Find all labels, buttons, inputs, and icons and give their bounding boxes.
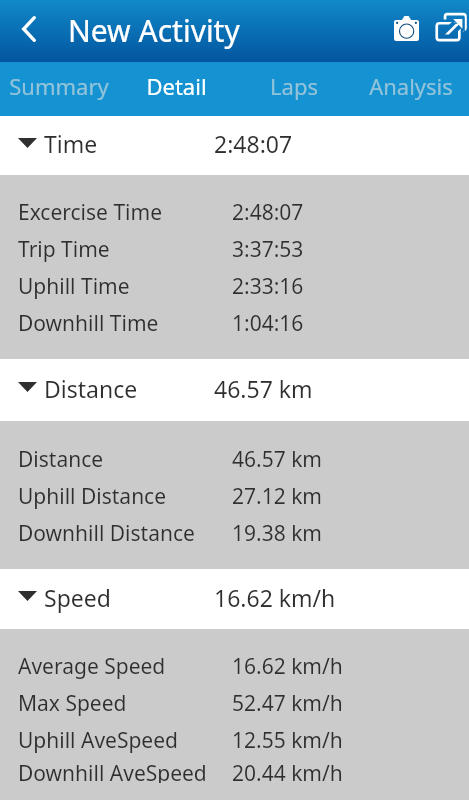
staticText: Distance (44, 373, 138, 404)
button[interactable]: Uphill Time (0, 267, 469, 304)
staticText: Speed (44, 582, 111, 613)
staticText: 52.47 km/h (232, 689, 343, 718)
staticText: Average Speed (18, 652, 166, 681)
button[interactable]: Share (429, 5, 469, 45)
staticText: Time (44, 128, 98, 159)
staticText: 16.62 km/h (214, 582, 336, 613)
button[interactable]: Back (0, 3, 56, 59)
button[interactable]: Distance (0, 359, 469, 421)
staticText: Downhill Time (18, 309, 159, 338)
staticText: New Activity (68, 10, 240, 51)
staticText: 20.44 km/h (232, 759, 343, 783)
staticText: Downhill AveSpeed (18, 759, 207, 783)
button[interactable]: Excercise Time (0, 193, 469, 230)
staticText: 2:48:07 (214, 128, 293, 159)
staticText: Trip Time (18, 235, 110, 264)
button[interactable]: Trip Time (0, 230, 469, 267)
staticText: Analysis (369, 71, 453, 101)
button[interactable]: Summary (0, 62, 118, 116)
staticText: 46.57 km (232, 445, 322, 474)
staticText: Uphill Distance (18, 482, 167, 511)
staticText: 19.38 km (232, 519, 322, 548)
button[interactable]: Laps (235, 62, 352, 116)
button[interactable]: Take photo (384, 6, 428, 50)
button[interactable]: Time (0, 116, 469, 175)
staticText: 27.12 km (232, 482, 322, 511)
staticText: Max Speed (18, 689, 127, 718)
button[interactable]: Distance (0, 440, 469, 477)
staticText: 2:48:07 (232, 198, 304, 227)
button[interactable]: Uphill Distance (0, 477, 469, 514)
staticText: Laps (270, 71, 318, 101)
staticText: 16.62 km/h (232, 652, 343, 681)
staticText: Distance (18, 445, 104, 474)
button[interactable]: Downhill Time (0, 304, 469, 341)
staticText: 12.55 km/h (232, 726, 343, 755)
button[interactable]: Average Speed (0, 647, 469, 684)
button[interactable]: Downhill AveSpeed (0, 758, 469, 782)
staticText: 46.57 km (214, 373, 313, 404)
button[interactable]: Downhill Distance (0, 514, 469, 551)
staticText: Summary (9, 71, 109, 101)
staticText: Excercise Time (18, 198, 162, 227)
staticText: 3:37:53 (232, 235, 304, 264)
button[interactable]: Analysis (352, 62, 469, 116)
button[interactable]: Uphill AveSpeed (0, 721, 469, 758)
staticText: Uphill Time (18, 272, 130, 301)
staticText: 2:33:16 (232, 272, 304, 301)
button[interactable]: Max Speed (0, 684, 469, 721)
staticText: 1:04:16 (232, 309, 304, 338)
staticText: Downhill Distance (18, 519, 195, 548)
staticText: Uphill AveSpeed (18, 726, 178, 755)
button[interactable]: Detail (118, 62, 235, 116)
staticText: Detail (146, 71, 207, 101)
button[interactable]: Speed (0, 569, 469, 629)
